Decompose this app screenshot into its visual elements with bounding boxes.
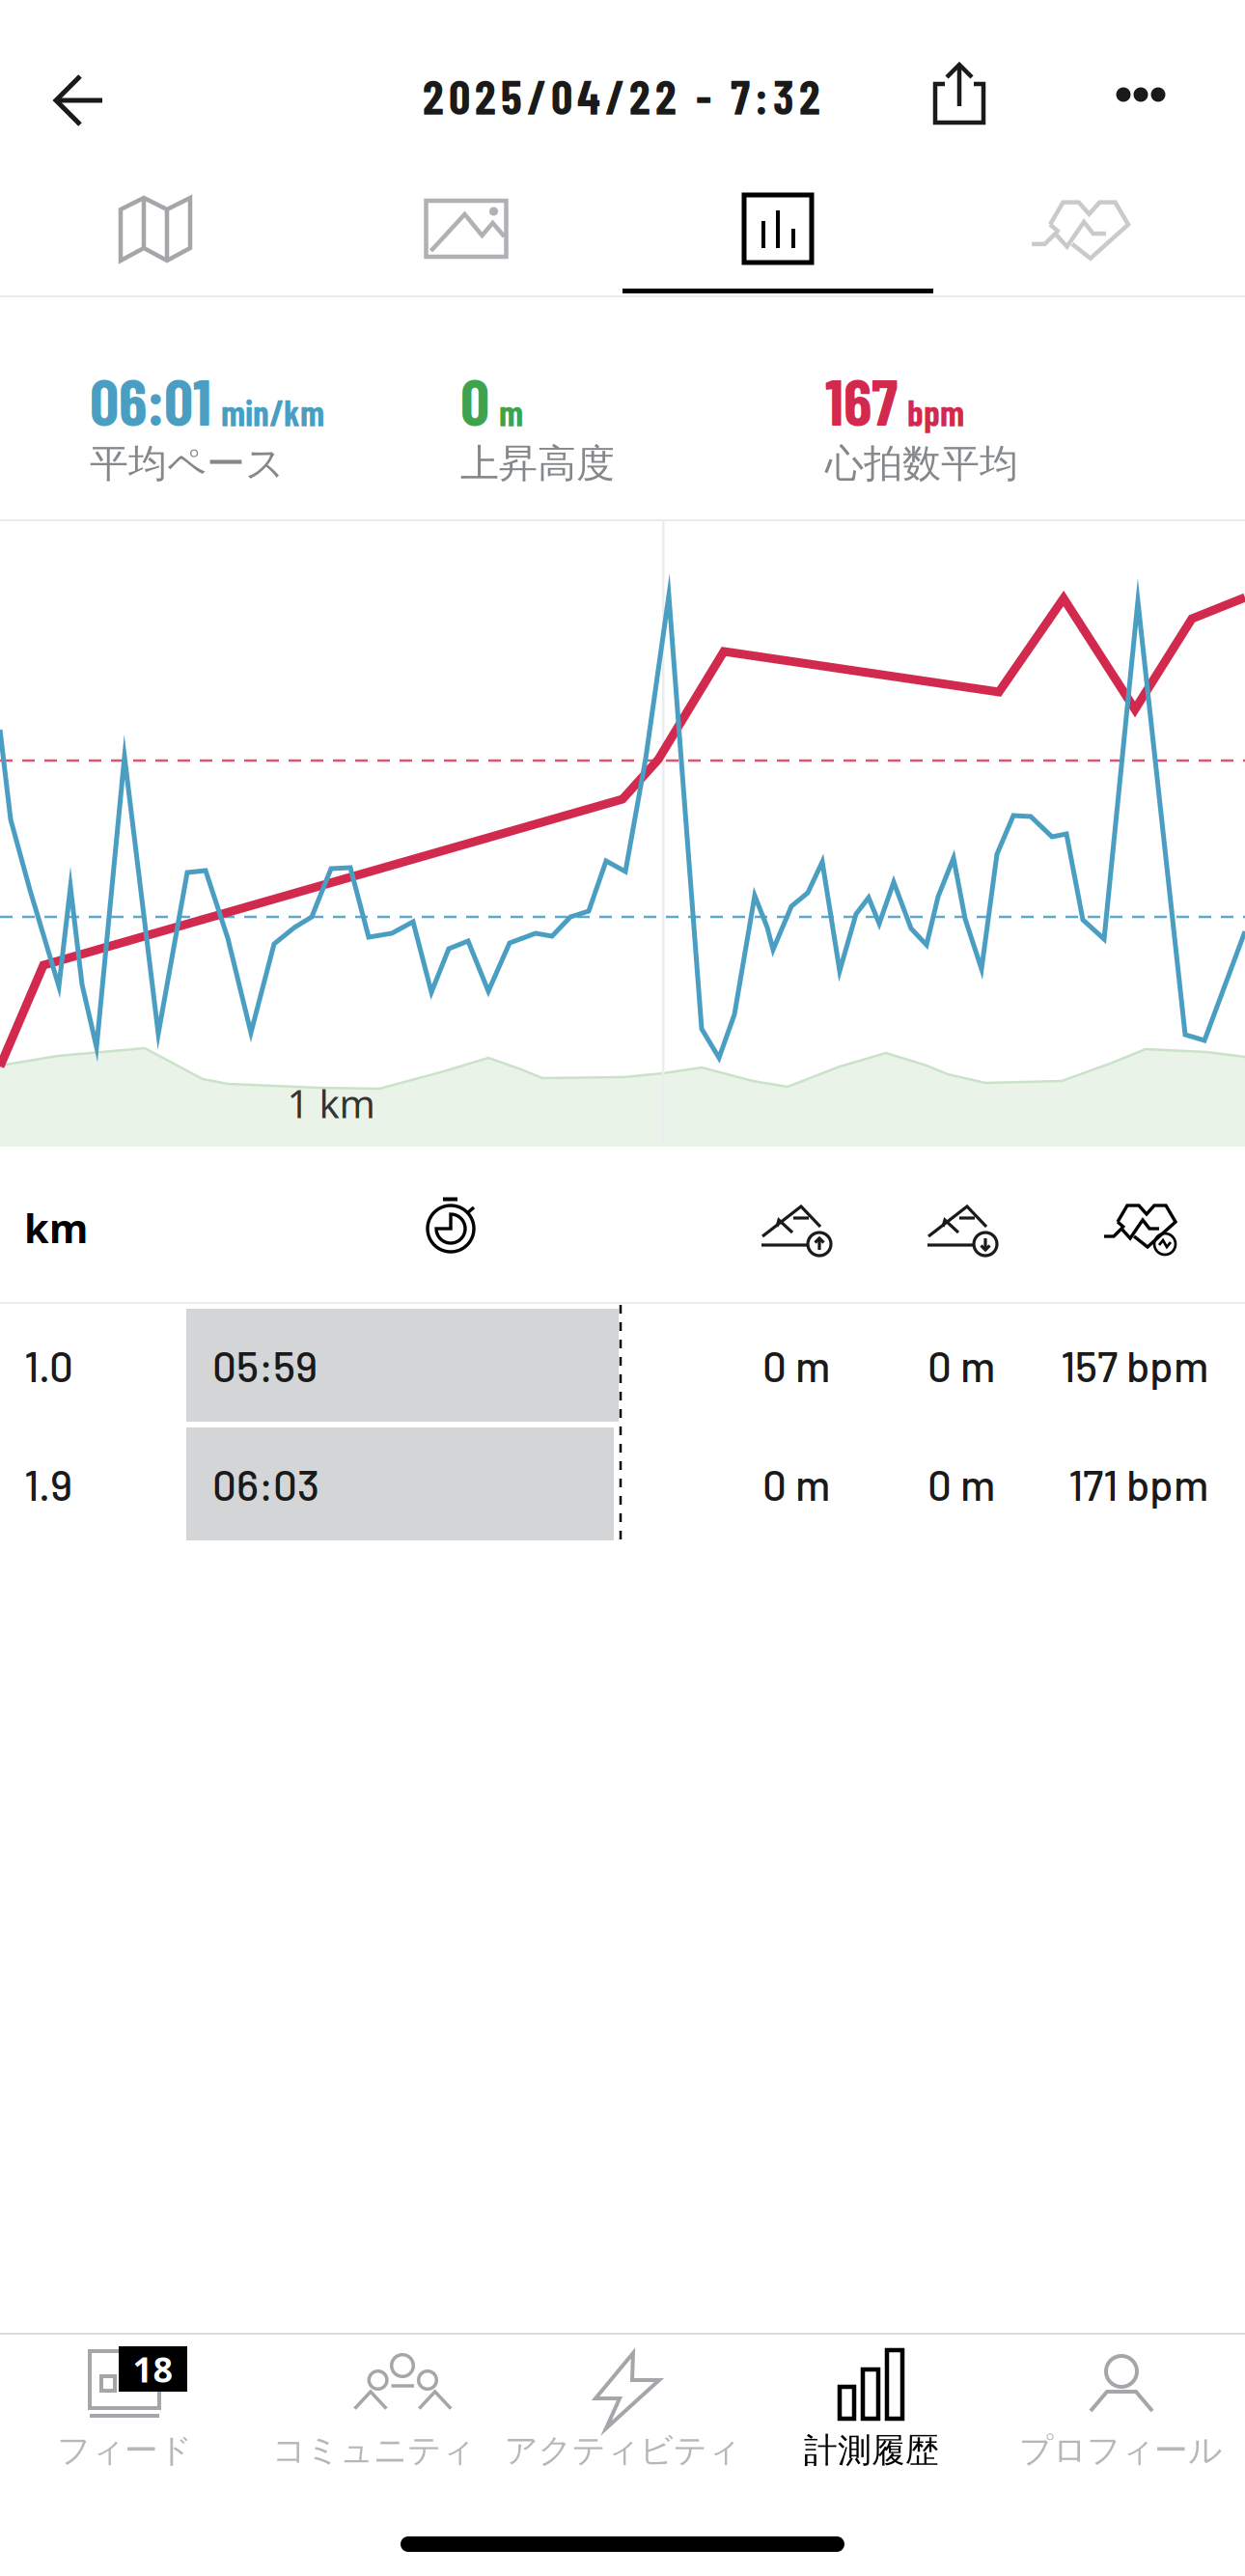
button[interactable]: プロフィール <box>996 2335 1245 2479</box>
button[interactable] <box>29 52 125 149</box>
staticText: 06:03 <box>212 1458 319 1509</box>
staticText: 0 m <box>762 1340 830 1391</box>
staticText: 0 <box>460 361 489 438</box>
button[interactable] <box>911 44 1008 141</box>
staticText: 0 m <box>927 1340 995 1391</box>
staticText: 1.9 <box>24 1458 72 1509</box>
button[interactable]: 計測履歴 <box>747 2335 996 2479</box>
staticText: 心拍数平均 <box>825 439 1018 488</box>
staticText: アクティビティ <box>504 2429 741 2472</box>
staticText: 平均ペース <box>90 439 285 488</box>
staticText: 計測履歴 <box>804 2429 939 2472</box>
staticText: 05:59 <box>212 1340 318 1391</box>
button[interactable]: 18 <box>0 2335 249 2479</box>
staticText: 1 km <box>287 1077 375 1130</box>
button[interactable] <box>934 154 1245 295</box>
button[interactable] <box>0 154 311 295</box>
staticText: フィード <box>57 2429 192 2472</box>
staticText: コミュニティ <box>272 2429 475 2472</box>
staticText: min/km <box>221 390 324 434</box>
staticText: km <box>24 1201 88 1255</box>
button[interactable] <box>1093 46 1189 143</box>
staticText: 2025/04/22 - 7:32 <box>423 67 820 124</box>
staticText: 06:01 <box>90 361 211 438</box>
staticText: 157 bpm <box>1061 1340 1208 1391</box>
button[interactable] <box>311 154 622 295</box>
staticText: 上昇高度 <box>460 439 615 488</box>
button[interactable] <box>622 154 933 295</box>
staticText: bpm <box>907 390 964 434</box>
staticText: 18 <box>133 2345 173 2393</box>
staticText: 0 m <box>762 1458 830 1509</box>
button[interactable]: コミュニティ <box>249 2335 498 2479</box>
staticText: 167 <box>825 361 898 438</box>
staticText: 171 bpm <box>1068 1458 1208 1509</box>
staticText: プロフィール <box>1019 2429 1222 2472</box>
staticText: m <box>499 390 523 434</box>
staticText: 1.0 <box>24 1340 73 1391</box>
button[interactable]: アクティビティ <box>498 2335 747 2479</box>
staticText: 0 m <box>927 1458 995 1509</box>
